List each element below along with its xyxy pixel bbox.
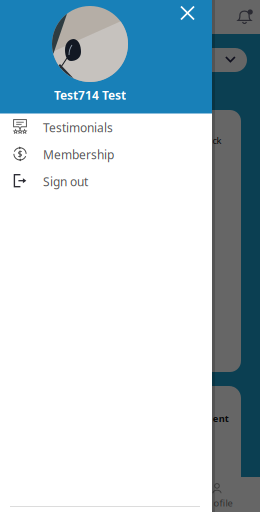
- button[interactable]: Notifications: [237, 9, 253, 26]
- staticText: Test714 Test: [54, 87, 126, 103]
- button[interactable]: Sign out: [0, 172, 212, 199]
- staticText: ofile: [213, 497, 232, 509]
- button[interactable]: Testimonials: [0, 118, 212, 145]
- button[interactable]: Profile tab: [212, 483, 221, 494]
- button[interactable]: Membership: [0, 145, 212, 172]
- staticText: Testimonials: [43, 119, 113, 135]
- button[interactable]: Close menu: [174, 0, 201, 26]
- staticText: ent: [213, 412, 229, 425]
- staticText: Sign out: [43, 173, 88, 189]
- staticText: ck: [212, 134, 221, 147]
- staticText: Membership: [43, 146, 114, 162]
